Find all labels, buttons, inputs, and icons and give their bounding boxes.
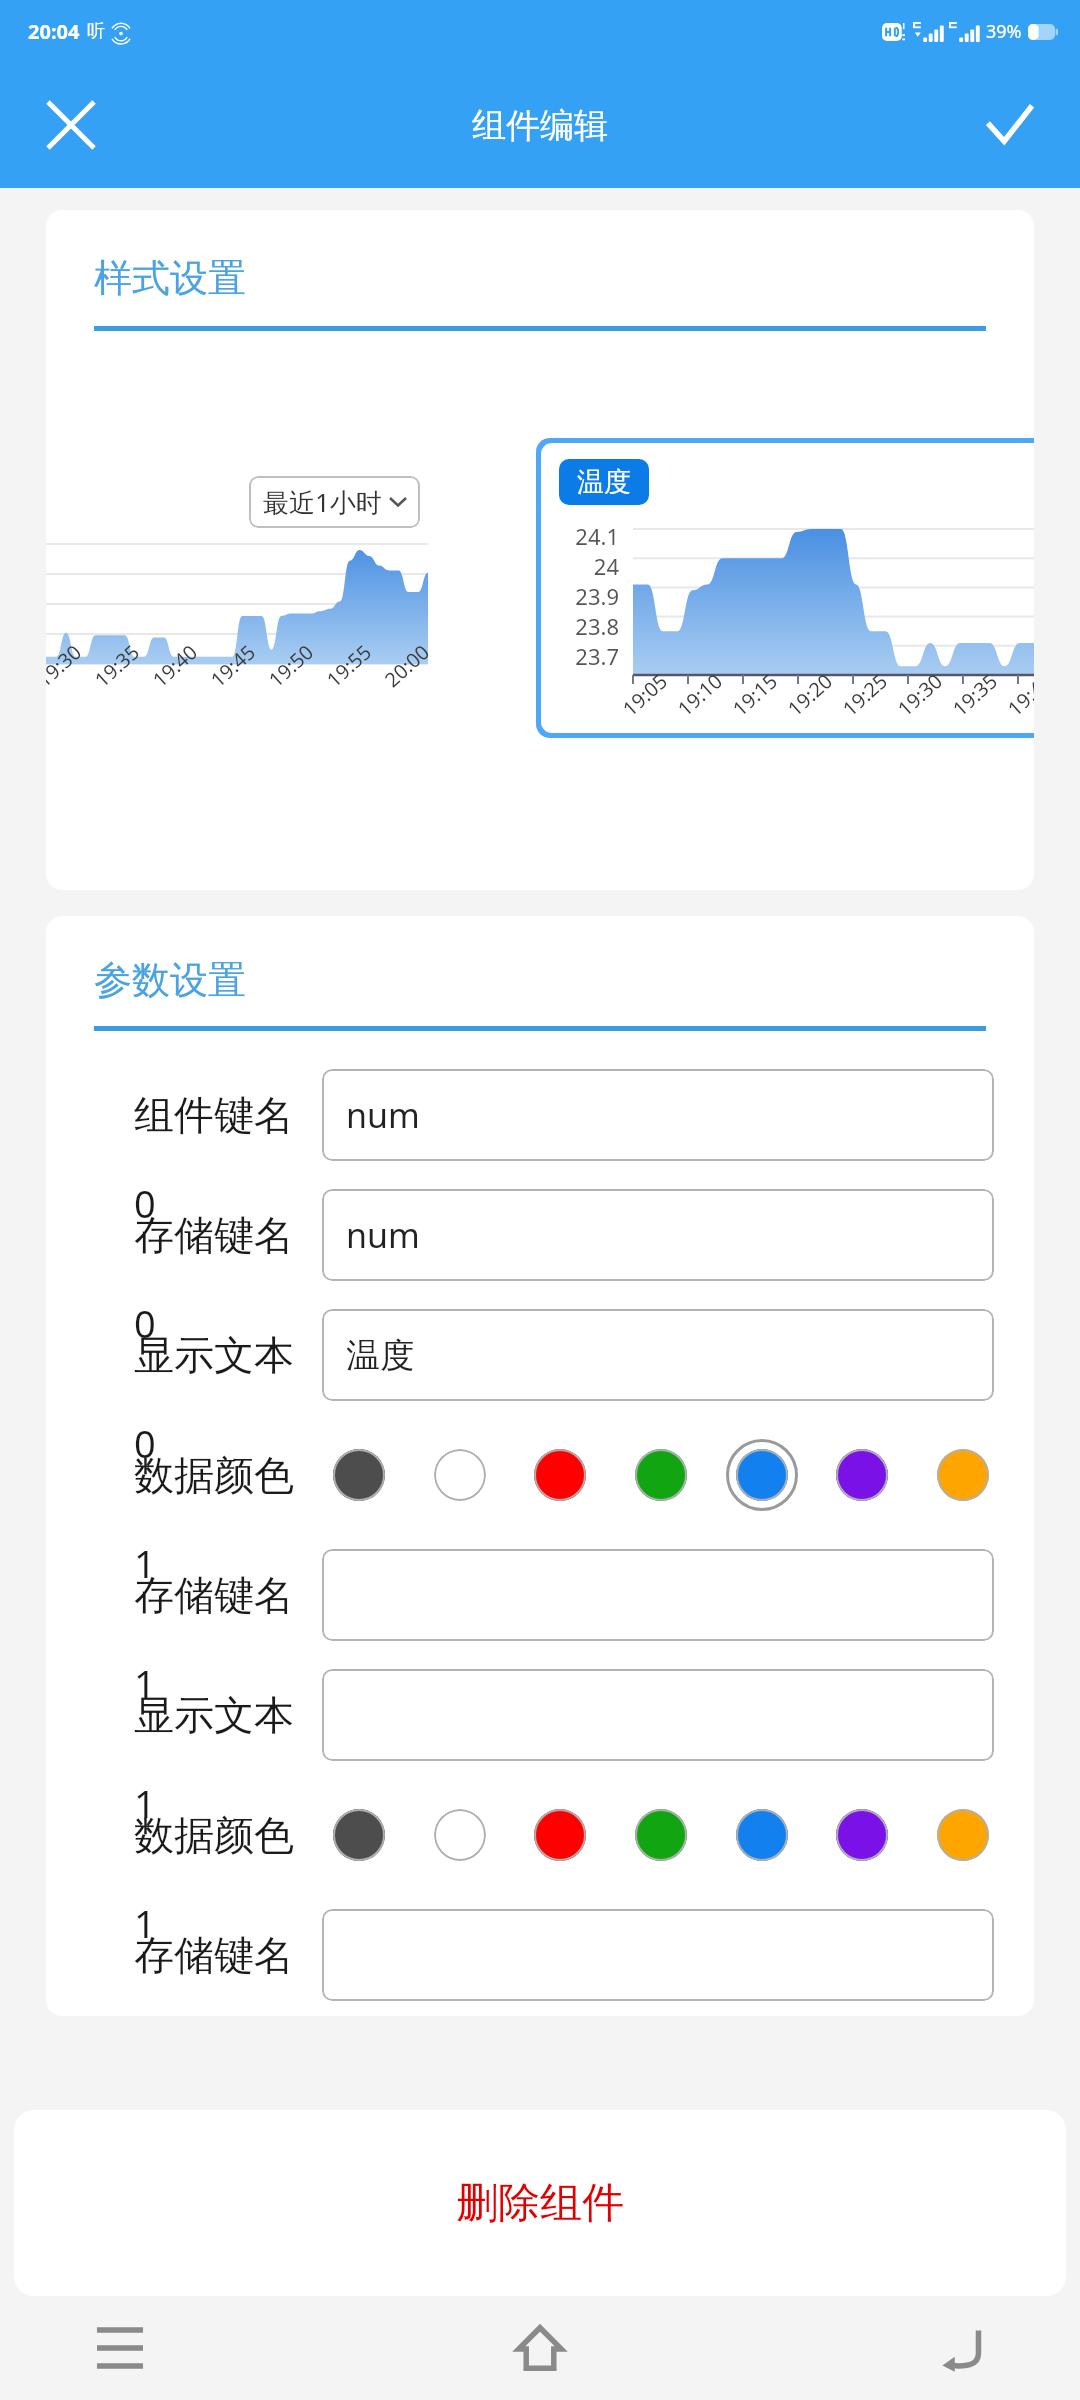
staticText: 19:35 (947, 667, 1003, 722)
staticText: num (346, 1212, 420, 1258)
staticText: 存储键名 (134, 1210, 294, 1260)
staticText: 温度 (577, 465, 631, 499)
button[interactable]: 0 (46, 1175, 1034, 1295)
staticText: 19:05 (617, 667, 673, 722)
staticText: 39% (986, 19, 1022, 44)
button[interactable]: Color option 2 (423, 1438, 497, 1512)
button[interactable]: Color option 4 (624, 1798, 698, 1872)
staticText: 19:35 (89, 638, 145, 693)
staticText: 23.7 (551, 641, 619, 671)
staticText: 19:40 (1002, 667, 1034, 722)
button[interactable]: Color option 5 (725, 1798, 799, 1872)
staticText: 0 (134, 1297, 156, 1349)
staticText: 19:10 (672, 667, 728, 722)
button[interactable]: Color option 6 (825, 1798, 899, 1872)
staticText: 19:50 (263, 638, 319, 693)
staticText: 19:25 (837, 667, 893, 722)
button[interactable]: 温度 (541, 443, 1034, 733)
button[interactable]: Close (40, 94, 102, 156)
staticText: 0 (134, 1177, 156, 1229)
staticText: 参数设置 (94, 956, 246, 1004)
button[interactable]: 最近1小时 (46, 458, 436, 718)
button[interactable]: 1 (46, 1535, 1034, 1655)
button[interactable]: Back (912, 2300, 1008, 2396)
button[interactable]: Color option 6 (825, 1438, 899, 1512)
staticText: num (346, 1092, 420, 1138)
staticText: 0 (134, 1417, 156, 1469)
button[interactable]: 0 (46, 1295, 1034, 1415)
button[interactable]: 温度 (577, 465, 631, 499)
staticText: 23.8 (551, 611, 619, 641)
staticText: 1 (134, 1897, 156, 1949)
staticText: 24.1 (551, 521, 619, 551)
staticText: 23.9 (551, 581, 619, 611)
staticText: 19:55 (321, 638, 377, 693)
button[interactable]: Color option 4 (624, 1438, 698, 1512)
button[interactable]: 最近1小时 (263, 476, 406, 528)
staticText: 19:30 (46, 638, 87, 693)
button[interactable]: 组件键名 (46, 1055, 1034, 1175)
staticText: 20:00 (379, 638, 435, 693)
staticText: 存储键名 (134, 1930, 294, 1980)
button[interactable]: Confirm (978, 94, 1040, 156)
staticText: 存储键名 (134, 1570, 294, 1620)
staticText: 删除组件 (456, 2177, 624, 2230)
staticText: 样式设置 (94, 254, 246, 302)
staticText: 组件编辑 (472, 104, 608, 147)
staticText: 听 (87, 20, 105, 43)
staticText: 1 (134, 1777, 156, 1829)
button[interactable]: Color option 1 (322, 1798, 396, 1872)
staticText: 19:15 (727, 667, 783, 722)
staticText: 显示文本 (134, 1330, 294, 1380)
staticText: 最近1小时 (263, 484, 382, 520)
button[interactable]: 删除组件 (14, 2110, 1066, 2296)
button[interactable]: Color option 2 (423, 1798, 497, 1872)
staticText: 组件键名 (134, 1090, 294, 1140)
button[interactable]: Color option 7 (926, 1438, 1000, 1512)
button[interactable]: 1 (46, 1895, 1034, 2015)
staticText: 19:40 (147, 638, 203, 693)
staticText: 20:04 (28, 18, 80, 45)
button[interactable]: Recents (72, 2300, 168, 2396)
staticText: 1 (134, 1657, 156, 1709)
staticText: 19:45 (205, 638, 261, 693)
staticText: 19:30 (892, 667, 948, 722)
button[interactable]: Color option 3 (523, 1438, 597, 1512)
button[interactable]: Color option 3 (523, 1798, 597, 1872)
button[interactable]: 1 (46, 1655, 1034, 1775)
staticText: 温度 (346, 1334, 414, 1377)
button[interactable]: Color option 7 (926, 1798, 1000, 1872)
button[interactable]: Home (492, 2300, 588, 2396)
staticText: 24 (551, 551, 619, 581)
staticText: 19:20 (782, 667, 838, 722)
button[interactable]: Color option 1 (322, 1438, 396, 1512)
staticText: 数据颜色 (134, 1810, 294, 1860)
button[interactable]: Color option 5 (725, 1438, 799, 1512)
staticText: 数据颜色 (134, 1450, 294, 1500)
staticText: 显示文本 (134, 1690, 294, 1740)
staticText: 1 (134, 1537, 156, 1589)
